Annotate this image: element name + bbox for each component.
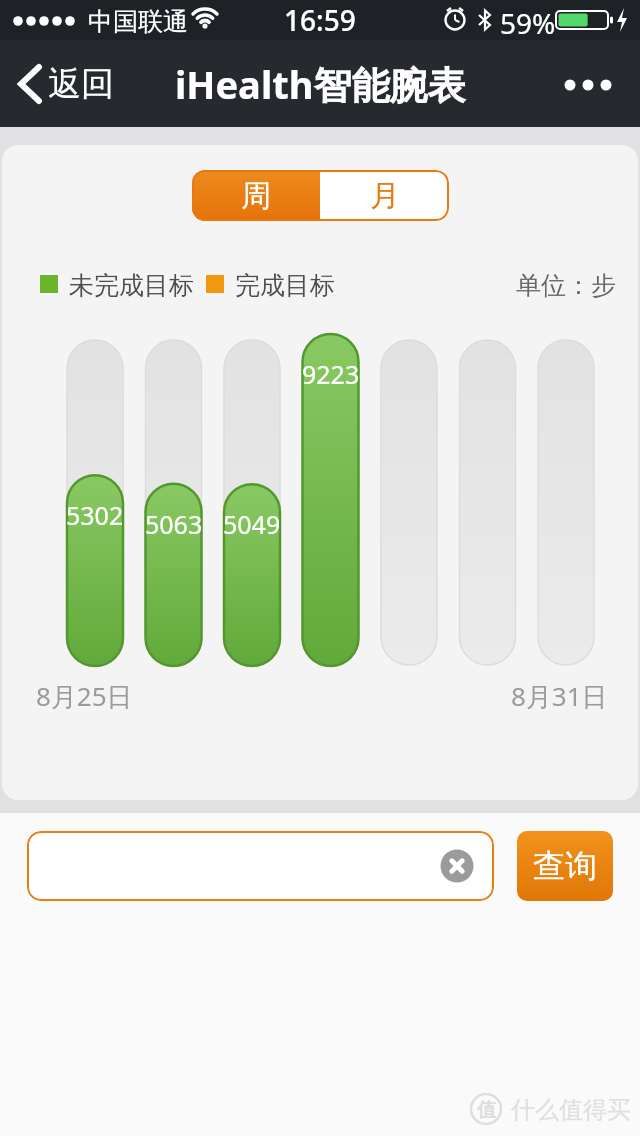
button[interactable]: 月 bbox=[320, 170, 449, 221]
staticText: 什么值得买 bbox=[511, 1095, 631, 1125]
button[interactable] bbox=[560, 40, 620, 127]
staticText: 返回 bbox=[48, 63, 114, 105]
staticText: 查询 bbox=[533, 846, 597, 886]
staticText: 周 bbox=[241, 177, 271, 215]
button[interactable]: 查询 bbox=[517, 831, 613, 901]
staticText: 值 bbox=[477, 1098, 496, 1120]
staticText: 59% bbox=[500, 4, 556, 42]
staticText: 5302 bbox=[66, 498, 124, 532]
staticText: 单位：步 bbox=[516, 270, 616, 301]
staticText: 16:59 bbox=[284, 1, 356, 39]
staticText: 中国联通 bbox=[88, 6, 188, 37]
staticText: 9223 bbox=[302, 357, 360, 391]
staticText: 5063 bbox=[145, 507, 203, 541]
staticText: 8月25日 bbox=[36, 678, 133, 714]
button[interactable] bbox=[440, 849, 474, 883]
staticText: 5049 bbox=[223, 507, 281, 541]
staticText: 8月31日 bbox=[511, 678, 608, 714]
button[interactable]: 周 bbox=[192, 170, 320, 221]
staticText: iHealth智能腕表 bbox=[175, 58, 466, 110]
button[interactable] bbox=[27, 831, 494, 901]
button[interactable]: 返回 bbox=[18, 40, 114, 127]
staticText: 未完成目标 bbox=[69, 270, 194, 301]
staticText: 月 bbox=[370, 177, 400, 215]
staticText: 完成目标 bbox=[235, 270, 335, 301]
